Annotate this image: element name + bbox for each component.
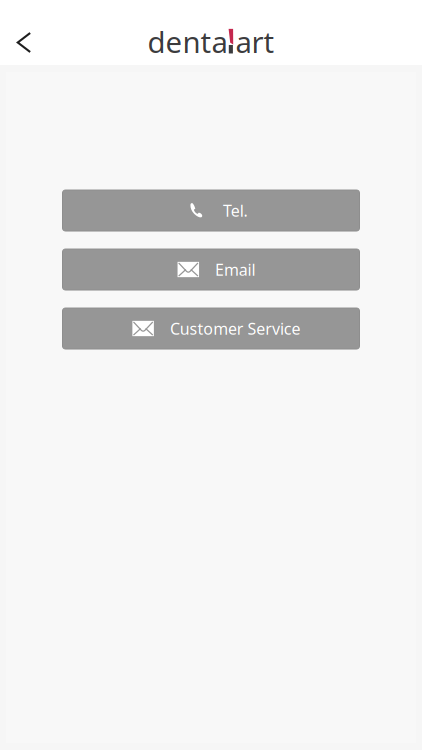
button[interactable]: Email: [62, 249, 359, 290]
staticText: Customer Service: [170, 318, 301, 339]
staticText: art: [235, 22, 274, 61]
staticText: Email: [215, 259, 255, 280]
button[interactable]: Customer Service: [62, 308, 359, 349]
button[interactable]: Tel.: [62, 190, 359, 231]
button[interactable]: Back: [2, 20, 46, 64]
staticText: denta: [148, 22, 228, 61]
staticText: Tel.: [223, 200, 247, 221]
